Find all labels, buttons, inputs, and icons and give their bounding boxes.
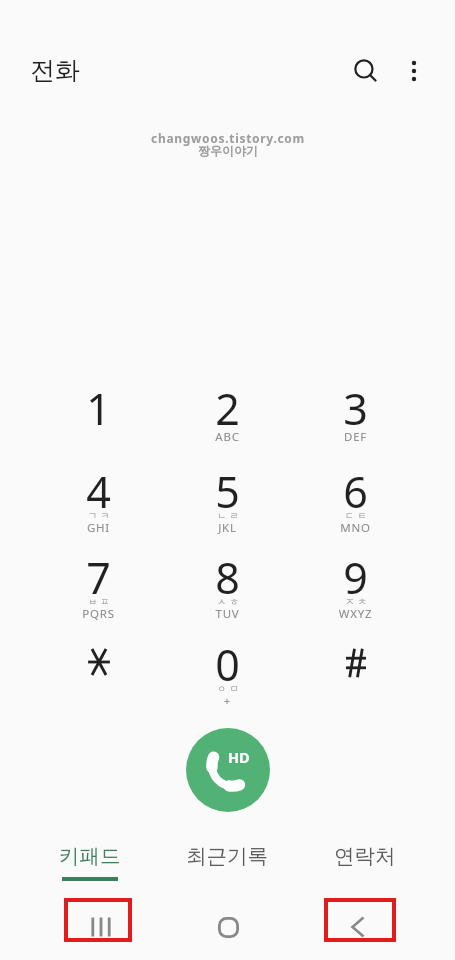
- staticText: 3: [343, 379, 368, 438]
- button[interactable]: Search: [342, 47, 390, 95]
- button[interactable]: 5: [163, 449, 292, 535]
- button[interactable]: More options: [390, 47, 438, 95]
- staticText: JKL: [163, 520, 292, 536]
- button[interactable]: [34, 622, 163, 708]
- button[interactable]: Back: [324, 898, 396, 942]
- staticText: ㅂㅍ: [36, 596, 165, 607]
- staticText: 9: [343, 548, 368, 607]
- button[interactable]: Call: [186, 728, 270, 812]
- staticText: WXYZ: [291, 606, 420, 622]
- staticText: ㄴㄹ: [165, 510, 294, 521]
- button[interactable]: [291, 622, 420, 708]
- staticText: GHI: [34, 520, 163, 536]
- staticText: ㅈㅊ: [293, 596, 422, 607]
- button[interactable]: 연락처: [296, 843, 434, 895]
- staticText: 8: [215, 548, 240, 607]
- button[interactable]: 7: [34, 535, 163, 621]
- staticText: ㅇㅁ: [165, 683, 294, 694]
- staticText: 5: [215, 462, 240, 521]
- staticText: MNO: [291, 520, 420, 536]
- staticText: HD: [228, 747, 250, 767]
- button[interactable]: 9: [291, 535, 420, 621]
- button[interactable]: 0: [163, 622, 292, 708]
- staticText: 키패드: [59, 843, 121, 869]
- staticText: changwoos.tistory.com: [151, 130, 305, 146]
- staticText: 6: [343, 462, 368, 521]
- button[interactable]: 키패드: [21, 843, 158, 895]
- button[interactable]: 최근기록: [158, 843, 296, 895]
- staticText: 짱우이야기: [198, 143, 258, 158]
- staticText: 전화: [30, 55, 80, 86]
- staticText: 1: [86, 379, 111, 438]
- staticText: ㄱㅋ: [36, 510, 165, 521]
- button[interactable]: 8: [163, 535, 292, 621]
- staticText: 0: [215, 635, 240, 694]
- staticText: 연락처: [334, 843, 396, 869]
- button[interactable]: 3: [291, 366, 420, 452]
- staticText: 최근기록: [186, 843, 268, 869]
- staticText: DEF: [291, 429, 420, 445]
- button[interactable]: Home: [206, 898, 250, 942]
- button[interactable]: 2: [163, 366, 292, 452]
- staticText: 4: [86, 462, 111, 521]
- staticText: 2: [215, 379, 240, 438]
- staticText: PQRS: [34, 606, 163, 622]
- button[interactable]: Recent apps: [64, 898, 132, 942]
- staticText: TUV: [163, 606, 292, 622]
- button[interactable]: 6: [291, 449, 420, 535]
- staticText: ㅅㅎ: [165, 596, 294, 607]
- staticText: +: [163, 693, 292, 709]
- staticText: 7: [86, 548, 111, 607]
- staticText: ㄷㅌ: [293, 510, 422, 521]
- button[interactable]: 4: [34, 449, 163, 535]
- button[interactable]: 1: [34, 366, 163, 452]
- staticText: ABC: [163, 429, 292, 445]
